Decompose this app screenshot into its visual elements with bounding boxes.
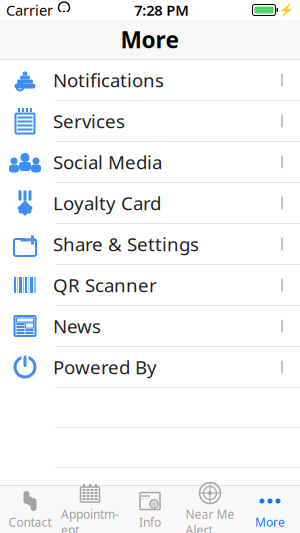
staticText: News xyxy=(53,314,101,338)
staticText: Carrier xyxy=(6,0,53,20)
button[interactable]: Services xyxy=(0,101,300,142)
button[interactable]: QR Scanner xyxy=(0,265,300,306)
staticText: Loyalty Card xyxy=(53,191,161,215)
staticText: More xyxy=(255,514,285,530)
button[interactable]: More xyxy=(240,487,300,531)
staticText: ⚡ xyxy=(279,3,294,17)
staticText: Notifications xyxy=(53,68,164,92)
button[interactable]: News xyxy=(0,306,300,347)
staticText: Services xyxy=(53,109,125,133)
staticText: Powered By xyxy=(53,355,157,379)
button[interactable]: Near Me Alert xyxy=(180,487,240,531)
staticText: Info xyxy=(139,514,161,530)
staticText: More xyxy=(120,24,179,54)
button[interactable]: Share & Settings xyxy=(0,224,300,265)
button[interactable]: Social Media xyxy=(0,142,300,183)
button[interactable]: Contact xyxy=(0,487,60,531)
button[interactable]: Loyalty Card xyxy=(0,183,300,224)
staticText: Contact xyxy=(8,514,51,530)
staticText: QR Scanner xyxy=(53,273,157,297)
staticText: Social Media xyxy=(53,150,162,174)
button[interactable]: Info xyxy=(120,487,180,531)
staticText: Near Me Alert xyxy=(185,506,234,533)
staticText: Share & Settings xyxy=(53,232,199,256)
button[interactable]: Powered By xyxy=(0,347,300,388)
staticText: Appointment xyxy=(61,506,119,533)
button[interactable]: Appointment xyxy=(60,487,120,531)
button[interactable]: Notifications xyxy=(0,60,300,101)
staticText: 7:28 PM xyxy=(134,0,189,20)
